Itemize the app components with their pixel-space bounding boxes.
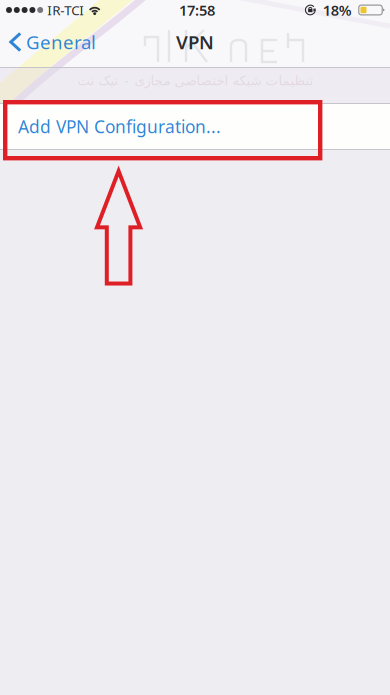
staticText: 18%	[323, 0, 352, 20]
staticText: IR-TCI	[47, 1, 84, 19]
button[interactable]: General	[0, 23, 96, 61]
button[interactable]: Add VPN Configuration...	[0, 104, 390, 149]
staticText: تنظیمات شبکه اختصاصی مجازی - تیک نت	[77, 71, 313, 89]
staticText: Add VPN Configuration...	[18, 115, 221, 138]
staticText: General	[26, 30, 96, 54]
staticText: VPN	[176, 30, 214, 54]
staticText: 17:58	[179, 0, 215, 20]
